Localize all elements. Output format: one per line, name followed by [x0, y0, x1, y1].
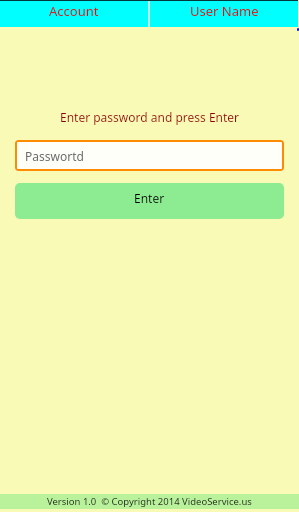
staticText: Enter — [134, 190, 165, 206]
button[interactable]: Account — [0, 0, 148, 27]
button[interactable]: Enter — [15, 183, 284, 219]
other: Scroll indicator — [297, 28, 299, 31]
button[interactable]: User Name — [150, 0, 298, 27]
staticText: Enter password and press Enter — [0, 109, 299, 125]
staticText: Account — [49, 2, 99, 20]
staticText: Passwortd — [25, 148, 84, 164]
button[interactable]: Passwortd — [15, 140, 284, 171]
staticText: Version 1.0 © Copyright 2014 VideoServic… — [47, 495, 252, 508]
staticText: User Name — [190, 2, 259, 20]
